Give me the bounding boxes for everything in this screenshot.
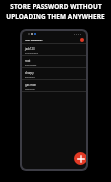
staticText: root	[25, 59, 31, 63]
staticText: githubacct	[25, 76, 35, 79]
staticText: UPLOADING THEM ANYWHERE	[6, 12, 105, 21]
button[interactable]: root	[22, 56, 86, 67]
staticText: Your Passwords	[25, 39, 43, 42]
staticText: bankingapp	[25, 64, 37, 67]
staticText: sharpy	[25, 71, 34, 75]
button[interactable]: Add password	[74, 152, 86, 165]
staticText: jack123	[25, 47, 35, 51]
staticText: gar-mon	[25, 83, 36, 87]
staticText: accountname	[25, 52, 38, 55]
staticText: STORE PASSWORD WITHOUT	[10, 2, 102, 11]
button[interactable]: sharpy	[22, 68, 86, 79]
button[interactable]: jack123	[22, 44, 86, 55]
button[interactable]: gar-mon	[22, 80, 86, 91]
button[interactable]: Account	[80, 38, 84, 42]
staticText: netflixuser	[25, 88, 36, 91]
